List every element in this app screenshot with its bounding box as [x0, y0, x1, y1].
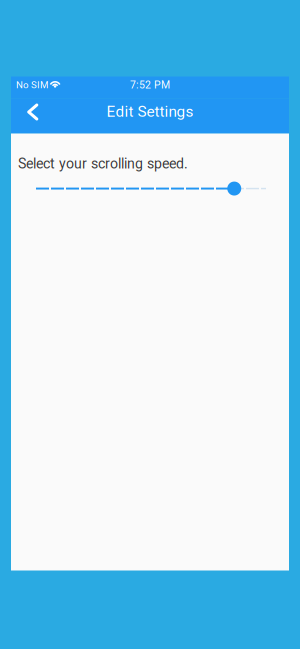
- staticText: Select your scrolling speed.: [18, 155, 188, 172]
- staticText: Edit Settings: [106, 102, 193, 120]
- staticText: 7:52 PM: [130, 79, 170, 91]
- staticText: No SIM: [16, 79, 48, 91]
- button[interactable]: Back: [11, 98, 53, 133]
